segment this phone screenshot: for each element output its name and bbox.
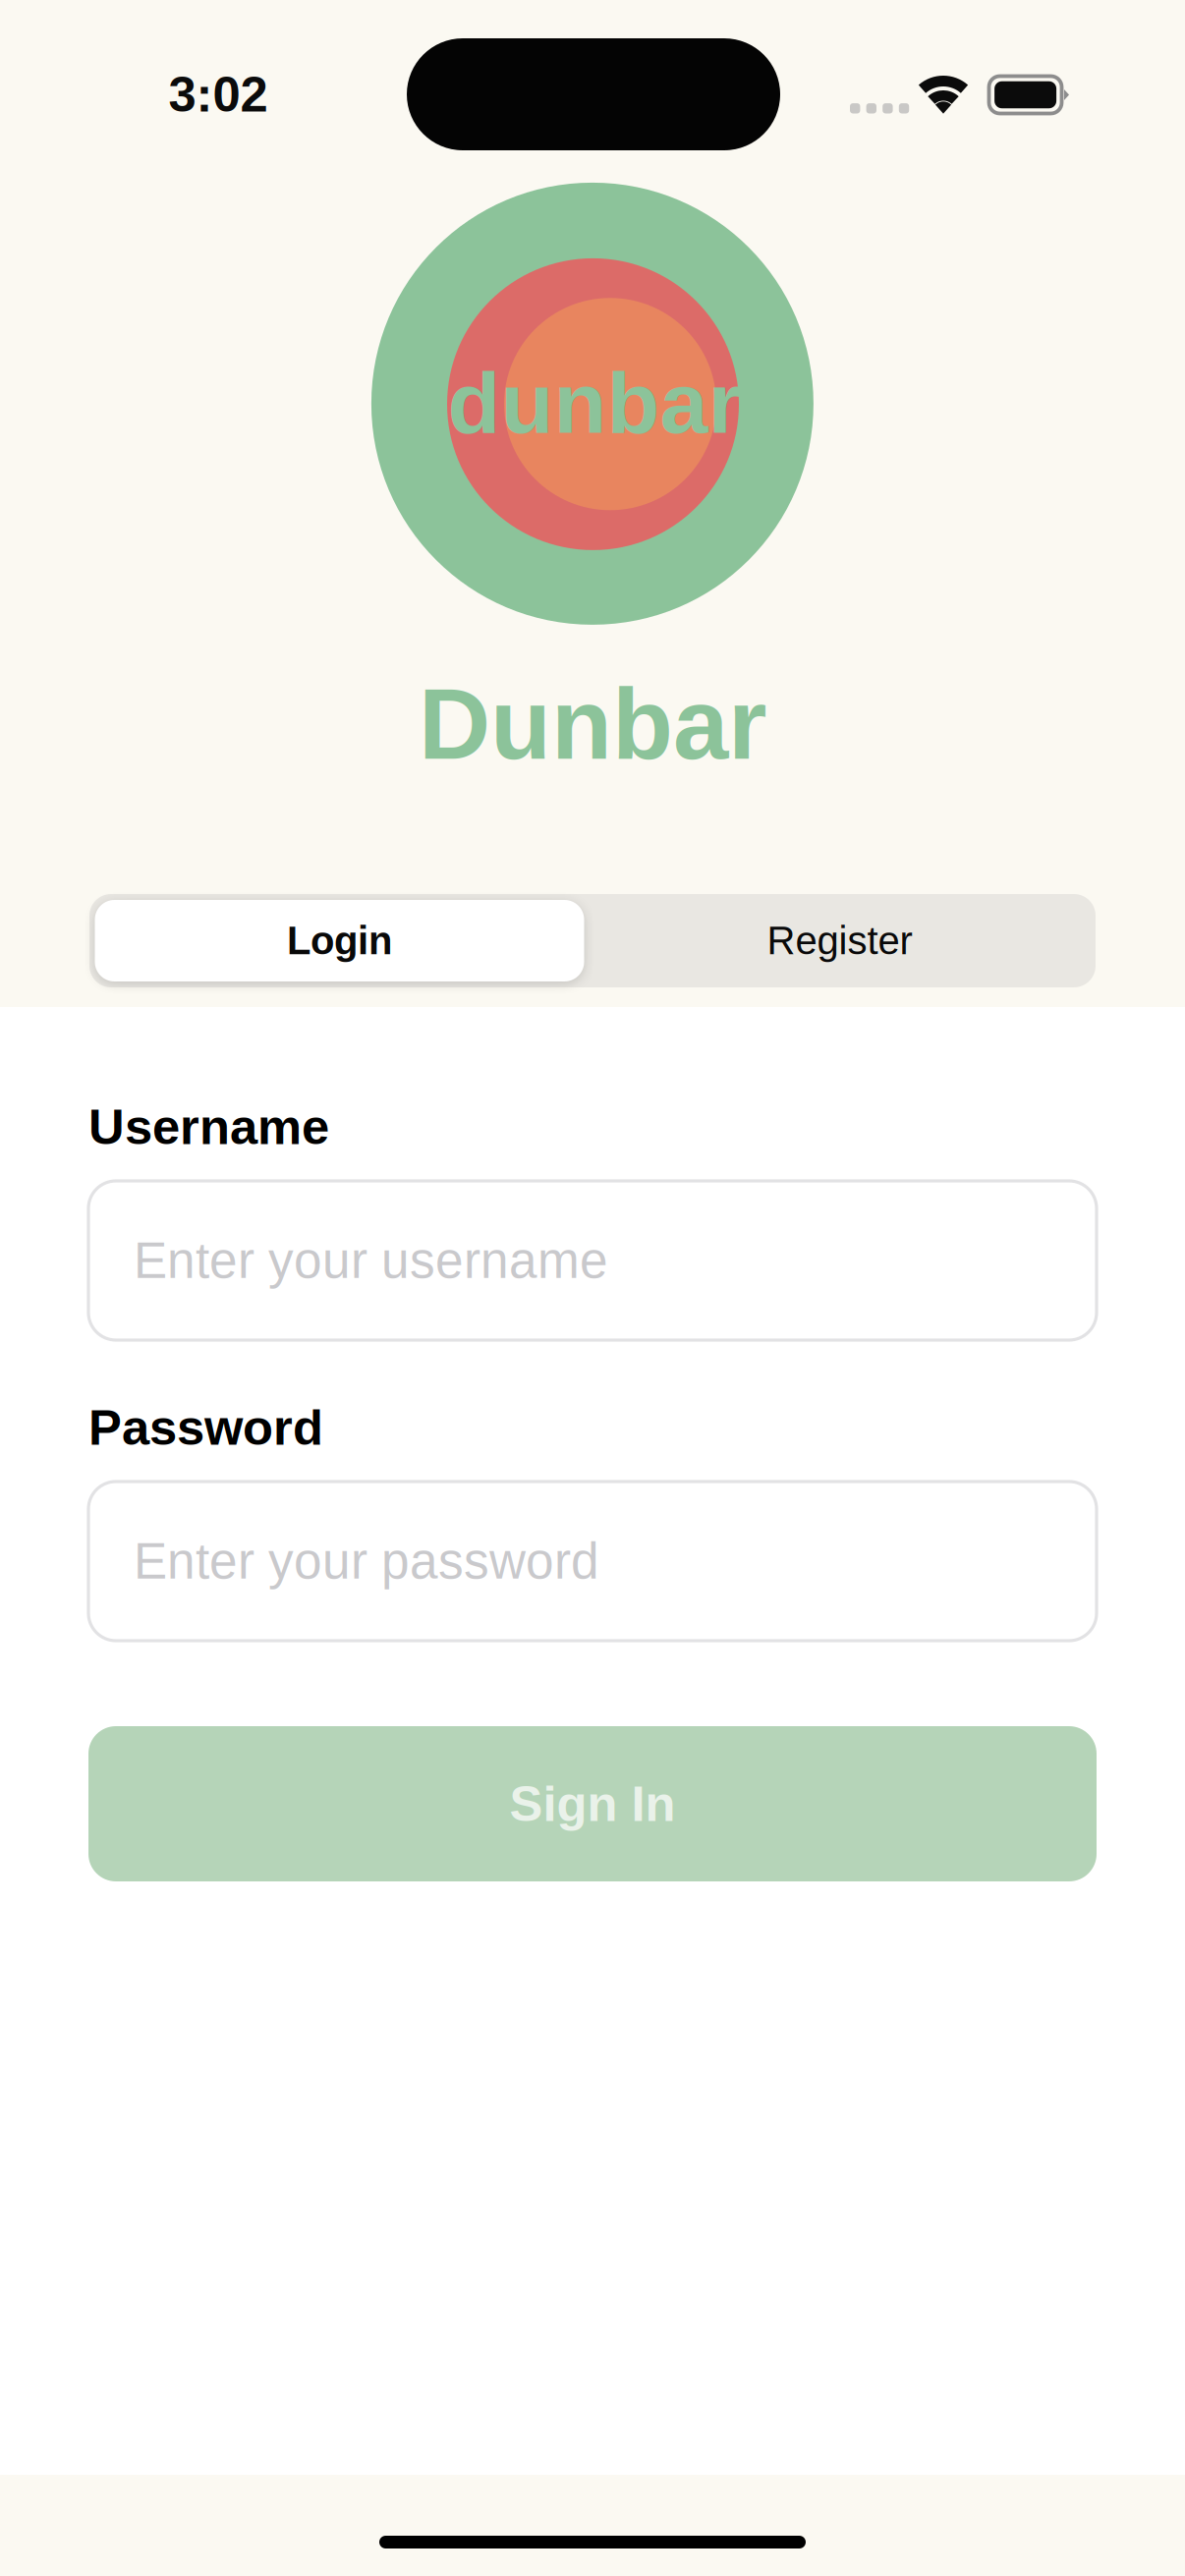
staticText: Username [88,1099,329,1155]
button[interactable]: Register [595,900,1084,981]
staticText: Login [287,919,392,963]
button[interactable]: Login [95,900,584,981]
staticText: Sign In [509,1776,676,1832]
staticText: Enter your username [134,1232,608,1289]
staticText: Password [88,1400,323,1455]
staticText: 3:02 [169,67,268,122]
staticText: Register [767,919,912,963]
staticText: Enter your password [134,1533,599,1589]
button[interactable]: Sign In [88,1726,1097,1881]
staticText: Dunbar [419,668,766,780]
staticText: dunbar [447,354,741,451]
